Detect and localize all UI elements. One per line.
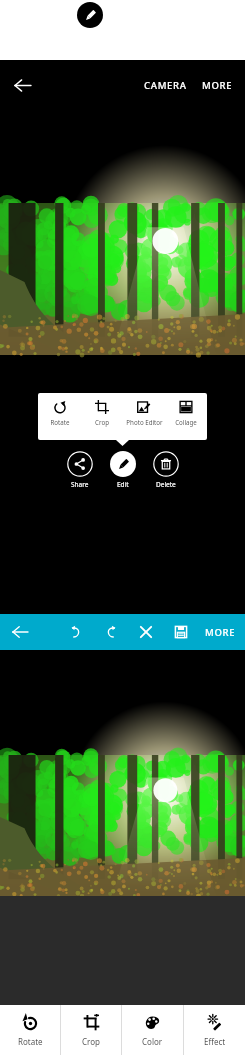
button[interactable]: Collage (165, 393, 207, 440)
staticText: Delete (156, 480, 176, 489)
staticText: Edit (117, 480, 129, 489)
staticText: Rotate (50, 418, 70, 426)
button[interactable]: Effect (184, 1005, 245, 1055)
staticText: Photo Editor (126, 418, 163, 426)
staticText: MORE (202, 79, 233, 92)
button[interactable]: Edit (110, 451, 136, 489)
staticText: Collage (175, 418, 197, 426)
button[interactable]: Rotate (38, 393, 81, 440)
button[interactable]: MORE (199, 73, 236, 98)
staticText: Crop (82, 1036, 100, 1047)
button[interactable]: Photo Editor (123, 393, 165, 440)
button[interactable]: Color (122, 1005, 183, 1055)
button[interactable]: Delete (153, 451, 179, 489)
button[interactable]: Crop (81, 393, 123, 440)
button[interactable]: Edit (77, 2, 103, 28)
staticText: Rotate (18, 1036, 43, 1047)
staticText: Effect (204, 1036, 226, 1047)
button[interactable]: Back (6, 69, 38, 101)
staticText: MORE (205, 626, 236, 639)
button[interactable]: MORE (202, 620, 245, 645)
button[interactable]: Undo (64, 620, 88, 644)
button[interactable]: Back (6, 618, 34, 646)
button[interactable]: Rotate (0, 1005, 60, 1055)
button[interactable]: Crop (61, 1005, 121, 1055)
button[interactable]: Close (134, 620, 158, 644)
button[interactable]: Redo (99, 620, 123, 644)
staticText: Crop (95, 418, 109, 426)
staticText: CAMERA (144, 79, 187, 92)
button[interactable]: CAMERA (141, 73, 190, 98)
staticText: Share (71, 480, 89, 489)
staticText: Color (142, 1036, 163, 1047)
button[interactable]: Save (169, 620, 193, 644)
button[interactable]: Share (67, 451, 93, 489)
